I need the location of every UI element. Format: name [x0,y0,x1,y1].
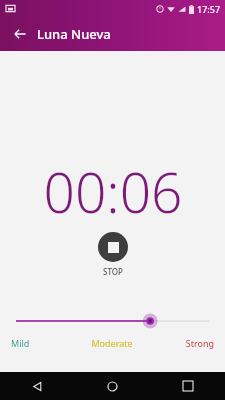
staticText: Moderate [78,337,146,349]
staticText: Luna Nueva [37,25,111,43]
button[interactable]: Recent apps [150,372,225,400]
staticText: 00:06 [43,154,183,229]
staticText: Strong [146,337,214,349]
button[interactable]: Stop [98,232,128,262]
staticText: Mild [11,337,78,349]
button[interactable]: Intensity slider [0,311,225,331]
button[interactable]: Back [0,372,75,400]
staticText: 17:57 [197,3,221,15]
staticText: STOP [103,266,123,277]
button[interactable]: Home [75,372,150,400]
button[interactable]: Back [5,19,35,49]
